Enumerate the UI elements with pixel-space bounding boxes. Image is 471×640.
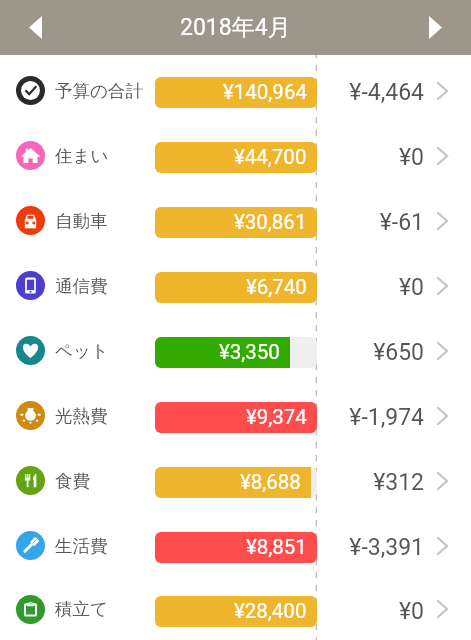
button[interactable]: 通信費 (0, 253, 471, 318)
button[interactable]: Open details (429, 338, 455, 364)
button[interactable]: Open details (429, 403, 455, 429)
staticText: ¥0 (398, 274, 424, 301)
button[interactable]: Next month (399, 0, 471, 55)
staticText: 予算の合計 (55, 80, 143, 102)
staticText: 光熱費 (55, 405, 108, 427)
staticText: ¥28,400 (234, 599, 307, 623)
staticText: 2018年4月 (180, 13, 291, 42)
button[interactable]: Open details (429, 533, 455, 559)
button[interactable]: 自動車 (0, 188, 471, 253)
staticText: ¥-1,974 (349, 404, 424, 431)
staticText: 生活費 (55, 535, 108, 557)
staticText: 自動車 (55, 210, 108, 232)
staticText: ¥0 (398, 598, 424, 625)
staticText: ペット (55, 340, 109, 362)
staticText: ¥44,700 (234, 145, 307, 169)
staticText: ¥-3,391 (349, 534, 424, 561)
staticText: 通信費 (55, 275, 108, 297)
button[interactable]: Previous month (0, 0, 71, 55)
staticText: ¥-4,464 (349, 79, 424, 106)
button[interactable]: 生活費 (0, 513, 471, 578)
staticText: ¥9,374 (246, 405, 307, 429)
button[interactable]: Open details (429, 208, 455, 234)
staticText: ¥3,350 (219, 340, 280, 364)
staticText: ¥650 (373, 339, 424, 366)
button[interactable]: Open details (429, 468, 455, 494)
button[interactable]: 予算の合計 (0, 58, 471, 123)
staticText: ¥8,851 (246, 535, 307, 559)
button[interactable]: 積立て (0, 578, 471, 640)
staticText: ¥30,861 (234, 210, 307, 234)
staticText: 住まい (55, 145, 109, 167)
staticText: 積立て (55, 598, 108, 620)
button[interactable]: 食費 (0, 448, 471, 513)
staticText: ¥140,964 (223, 80, 307, 104)
button[interactable]: Open details (429, 596, 455, 622)
staticText: ¥0 (398, 144, 424, 171)
button[interactable]: ペット (0, 318, 471, 383)
staticText: ¥312 (373, 469, 424, 496)
button[interactable]: Open details (429, 273, 455, 299)
button[interactable]: Open details (429, 143, 455, 169)
staticText: ¥6,740 (246, 275, 307, 299)
staticText: 食費 (55, 470, 90, 492)
button[interactable]: 光熱費 (0, 383, 471, 448)
staticText: ¥8,688 (240, 470, 301, 494)
button[interactable]: 住まい (0, 123, 471, 188)
staticText: ¥-61 (379, 209, 424, 236)
button[interactable]: Open details (429, 78, 455, 104)
